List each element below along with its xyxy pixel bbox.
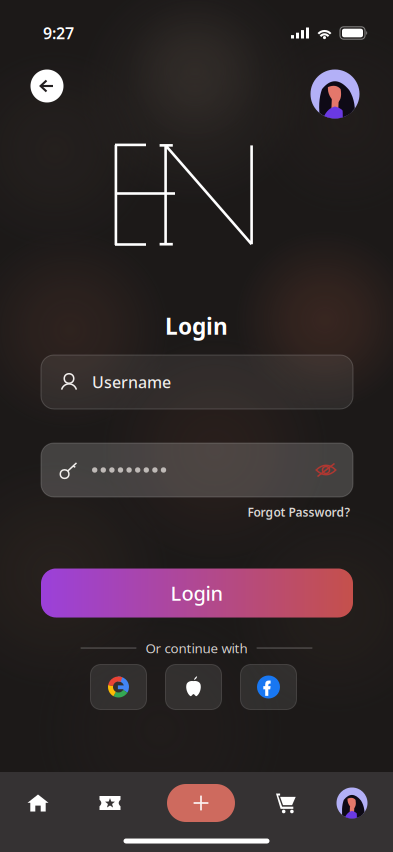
button[interactable]: Continue with Google: [90, 664, 146, 709]
button[interactable]: Cart: [255, 777, 317, 829]
button[interactable]: Continue with Apple: [165, 664, 221, 709]
staticText: Forgot Password?: [247, 504, 350, 520]
staticText: Login: [165, 311, 228, 341]
staticText: Or continue with: [145, 639, 247, 657]
button[interactable]: Login: [41, 568, 353, 617]
button[interactable]: Events: [79, 777, 141, 829]
staticText: Login: [170, 580, 223, 606]
button[interactable]: Forgot Password?: [245, 500, 352, 524]
button[interactable]: Continue with Facebook: [240, 664, 296, 709]
button[interactable]: Profile: [321, 777, 383, 829]
button[interactable]: Back: [25, 64, 69, 108]
button[interactable]: Account: [308, 67, 362, 121]
staticText: Username: [92, 371, 171, 393]
button[interactable]: Home: [7, 777, 69, 829]
button[interactable]: Add: [163, 777, 239, 829]
staticText: 9:27: [43, 22, 74, 44]
